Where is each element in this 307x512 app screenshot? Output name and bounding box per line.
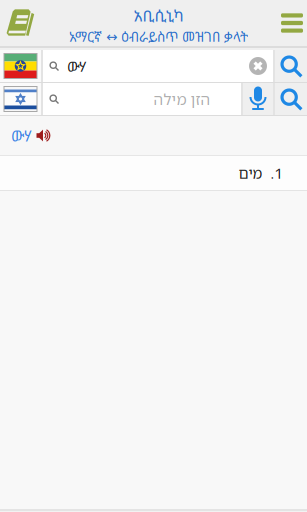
button[interactable]: Pronounce	[36, 129, 51, 142]
button[interactable]: Search field	[43, 50, 243, 82]
staticText: አማርኛ ↔ ዕብራይስጥ መዝገበ ቃላት	[69, 27, 248, 46]
staticText: ውሃ	[11, 125, 32, 146]
button[interactable]: Dictate	[247, 88, 269, 110]
button[interactable]: Search	[275, 50, 307, 82]
button[interactable]: Clear	[249, 57, 267, 75]
button[interactable]: Dictionary	[0, 8, 36, 37]
staticText: 1. מים	[238, 163, 282, 183]
button[interactable]: Search field	[43, 83, 241, 115]
staticText: ውሃ	[67, 56, 87, 76]
staticText: הזן מילה	[153, 89, 210, 109]
staticText: አቢሲኒካ	[133, 4, 183, 26]
button[interactable]: Choose language	[0, 50, 41, 82]
button[interactable]: Menu	[281, 6, 307, 40]
button[interactable]: Choose language	[0, 83, 41, 115]
button[interactable]: Search	[275, 83, 307, 115]
